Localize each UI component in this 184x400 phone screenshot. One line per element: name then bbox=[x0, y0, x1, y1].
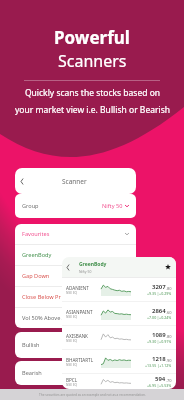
staticText: +6.95 |+5.53% bbox=[147, 383, 172, 388]
staticText: Favourites bbox=[22, 230, 50, 238]
button[interactable]: AXISBANK bbox=[66, 326, 172, 349]
staticText: Powerful bbox=[54, 26, 130, 49]
staticText: BHARTIARTL bbox=[66, 357, 94, 363]
staticText: .70 bbox=[166, 378, 172, 383]
staticText: +7.00 |+0.24% bbox=[147, 315, 172, 320]
staticText: +9.35 |+0.29% bbox=[147, 291, 172, 296]
staticText: 594 bbox=[155, 375, 166, 383]
button[interactable]: BPCL bbox=[66, 374, 172, 389]
staticText: Nifty 50 bbox=[79, 269, 92, 274]
staticText: +13.55 |+1.12% bbox=[145, 363, 172, 368]
staticText: ASIANPAINT bbox=[66, 309, 93, 315]
button[interactable]: Back bbox=[20, 168, 131, 194]
button[interactable]: GreenBody bbox=[22, 245, 129, 265]
button[interactable]: ASIANPAINT bbox=[66, 302, 172, 325]
staticText: The securities are quoted as an example … bbox=[39, 393, 146, 397]
staticText: Vol 50% Above A bbox=[22, 314, 66, 322]
button[interactable]: BHARTIARTL bbox=[66, 350, 172, 373]
staticText: Bullish bbox=[22, 341, 40, 349]
staticText: NSE EQ bbox=[66, 339, 78, 343]
button[interactable]: Close Below Pr bbox=[22, 287, 129, 307]
staticText: Scanners bbox=[58, 50, 127, 72]
staticText: .80 bbox=[166, 334, 172, 339]
staticText: BPCL bbox=[66, 377, 78, 383]
staticText: Group bbox=[22, 202, 39, 210]
button[interactable]: Vol 50% Above A bbox=[22, 308, 129, 328]
staticText: NSE EQ bbox=[66, 315, 78, 319]
button[interactable]: Bullish bbox=[15, 332, 136, 358]
button[interactable]: Bearish bbox=[15, 361, 136, 385]
staticText: Scanner bbox=[62, 177, 87, 186]
other: Back bbox=[20, 178, 24, 185]
staticText: Bearish bbox=[22, 369, 42, 377]
staticText: GreenBody bbox=[79, 261, 107, 268]
staticText: Close Below Pr bbox=[22, 293, 61, 301]
staticText: Nifty 50 bbox=[102, 202, 123, 210]
staticText: AXISBANK bbox=[66, 333, 88, 339]
staticText: 1218 bbox=[152, 355, 166, 363]
staticText: ADANIENT bbox=[66, 285, 89, 291]
staticText: 2864 bbox=[152, 307, 166, 315]
staticText: .80 bbox=[166, 286, 172, 291]
staticText: +9.30 |+0.91% bbox=[147, 339, 172, 344]
staticText: NSE EQ bbox=[66, 383, 78, 387]
other: Back bbox=[66, 264, 70, 271]
staticText: Gap Down bbox=[22, 272, 50, 280]
staticText: .60 bbox=[166, 310, 172, 315]
button[interactable]: Favourite bbox=[165, 264, 171, 270]
staticText: 1089 bbox=[152, 331, 166, 339]
button[interactable]: Back bbox=[66, 257, 171, 277]
button[interactable]: ADANIENT bbox=[66, 278, 172, 301]
staticText: 3207 bbox=[152, 283, 166, 291]
staticText: GreenBody bbox=[22, 251, 52, 259]
staticText: NSE EQ bbox=[66, 291, 78, 295]
button[interactable]: Gap Down bbox=[22, 266, 129, 286]
staticText: Quickly scans the stocks based on your m… bbox=[15, 87, 170, 116]
staticText: NSE EQ bbox=[66, 363, 78, 367]
staticText: .90 bbox=[166, 358, 172, 363]
button[interactable]: Group bbox=[22, 194, 129, 218]
button[interactable]: Favourites bbox=[22, 224, 129, 244]
